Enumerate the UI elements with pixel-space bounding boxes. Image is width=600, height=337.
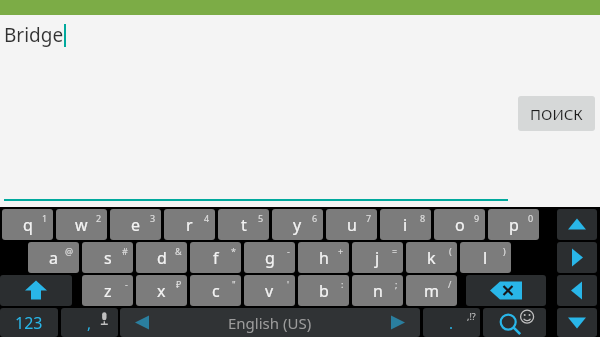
staticText: l xyxy=(483,247,488,269)
staticText: 5 xyxy=(258,212,264,224)
staticText: ,!? xyxy=(467,310,476,322)
staticText: j xyxy=(375,247,380,269)
staticText: p xyxy=(509,214,519,236)
button[interactable]: b xyxy=(298,275,349,306)
staticText: r xyxy=(186,214,193,236)
button[interactable]: Backspace xyxy=(466,275,546,306)
staticText: # xyxy=(122,245,128,257)
button[interactable]: English (US) xyxy=(120,308,420,337)
staticText: y xyxy=(293,214,302,236)
staticText: u xyxy=(347,214,357,236)
staticText: . xyxy=(449,313,454,333)
staticText: & xyxy=(175,245,182,257)
staticText: g xyxy=(265,247,275,269)
button[interactable]: e xyxy=(110,209,161,240)
staticText: q xyxy=(23,214,33,236)
button[interactable]: g xyxy=(244,242,295,273)
staticText: * xyxy=(231,245,236,257)
button[interactable]: l xyxy=(460,242,511,273)
staticText: 8 xyxy=(420,212,426,224)
button[interactable]: p xyxy=(488,209,539,240)
button[interactable]: z xyxy=(82,275,133,306)
staticText: w xyxy=(75,214,88,236)
button[interactable] xyxy=(423,308,480,337)
staticText: ПОИСК xyxy=(530,104,583,124)
button[interactable]: f xyxy=(190,242,241,273)
staticText: h xyxy=(319,247,329,269)
button[interactable]: Shift xyxy=(0,275,72,306)
staticText: v xyxy=(265,280,274,302)
staticText: n xyxy=(373,280,383,302)
staticText: " xyxy=(232,278,236,290)
button[interactable]: q xyxy=(2,209,53,240)
staticText: - xyxy=(287,245,290,257)
staticText: f xyxy=(213,247,219,269)
button[interactable]: y xyxy=(272,209,323,240)
staticText: Bridge xyxy=(4,22,64,48)
button[interactable]: h xyxy=(298,242,349,273)
button[interactable]: k xyxy=(406,242,457,273)
staticText: 123 xyxy=(15,312,43,334)
button[interactable]: ПОИСК xyxy=(518,96,595,131)
staticText: / xyxy=(448,278,452,290)
button[interactable]: x xyxy=(136,275,187,306)
staticText: ' xyxy=(287,278,290,290)
button[interactable]: Search xyxy=(483,308,546,337)
button[interactable]: v xyxy=(244,275,295,306)
staticText: - xyxy=(125,278,128,290)
button[interactable]: m xyxy=(406,275,457,306)
staticText: = xyxy=(392,245,398,257)
staticText: English (US) xyxy=(228,313,312,333)
staticText: @ xyxy=(65,245,74,257)
staticText: 1 xyxy=(42,212,48,224)
button[interactable]: Down xyxy=(557,308,597,337)
button[interactable]: n xyxy=(352,275,403,306)
staticText: d xyxy=(157,247,167,269)
staticText: b xyxy=(319,280,329,302)
staticText: 9 xyxy=(474,212,480,224)
staticText: ₽ xyxy=(176,278,182,290)
button[interactable]: u xyxy=(326,209,377,240)
staticText: 7 xyxy=(366,212,372,224)
staticText: + xyxy=(338,245,344,257)
button[interactable]: c xyxy=(190,275,241,306)
staticText: : xyxy=(341,278,344,290)
button[interactable]: r xyxy=(164,209,215,240)
staticText: ; xyxy=(395,278,398,290)
staticText: e xyxy=(131,214,141,236)
staticText: s xyxy=(104,247,112,269)
button[interactable]: j xyxy=(352,242,403,273)
staticText: m xyxy=(424,280,439,302)
staticText: 0 xyxy=(528,212,534,224)
button[interactable]: i xyxy=(380,209,431,240)
button[interactable]: a xyxy=(28,242,79,273)
button[interactable]: w xyxy=(56,209,107,240)
button[interactable]: o xyxy=(434,209,485,240)
button[interactable]: t xyxy=(218,209,269,240)
button[interactable]: s xyxy=(82,242,133,273)
staticText: , xyxy=(87,313,92,333)
staticText: 4 xyxy=(204,212,210,224)
button[interactable] xyxy=(0,308,58,337)
button[interactable]: Comma and voice input xyxy=(61,308,118,337)
button[interactable]: d xyxy=(136,242,187,273)
button[interactable]: 123 xyxy=(0,308,58,337)
staticText: k xyxy=(427,247,436,269)
button[interactable]: Left xyxy=(557,275,597,306)
staticText: 3 xyxy=(150,212,156,224)
staticText: 2 xyxy=(96,212,102,224)
staticText: i xyxy=(403,214,408,236)
staticText: t xyxy=(241,214,247,236)
button[interactable]: Up xyxy=(557,209,597,240)
staticText: a xyxy=(49,247,58,269)
staticText: ) xyxy=(503,245,506,257)
staticText: c xyxy=(212,280,220,302)
staticText: 6 xyxy=(312,212,318,224)
staticText: ( xyxy=(449,245,452,257)
staticText: z xyxy=(104,280,112,302)
staticText: x xyxy=(157,280,166,302)
button[interactable]: Right xyxy=(557,242,597,273)
staticText: o xyxy=(455,214,465,236)
